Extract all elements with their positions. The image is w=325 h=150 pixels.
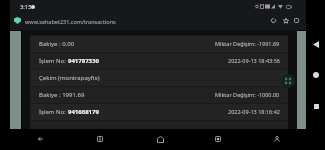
button[interactable]: Back [310, 38, 322, 50]
staticText: 941787330 [68, 57, 99, 65]
button[interactable]: Bookmarks [91, 130, 109, 148]
button[interactable]: Reload [268, 15, 279, 26]
staticText: 2022-09-13 18:43:56 [228, 57, 280, 64]
button[interactable]: Bakiye : 1991.69 [30, 86, 288, 103]
staticText: Bakiye : 1991.69 [39, 91, 85, 99]
button[interactable]: Profile [268, 130, 286, 148]
button[interactable]: Drag handle [281, 74, 295, 88]
staticText: Çekim (montrapayfix) [39, 74, 100, 82]
staticText: 941668179 [68, 108, 99, 116]
button[interactable]: Home [310, 69, 322, 81]
button[interactable]: İşlem No: [30, 103, 288, 120]
staticText: Miktar Değişim: -1991.69 [215, 40, 280, 47]
staticText: 2022-09-13 18:16:42 [228, 108, 280, 115]
staticText: İşlem No: [39, 108, 68, 116]
button[interactable]: Home [151, 130, 169, 148]
button[interactable]: Bookmark [280, 15, 291, 26]
staticText: Bakiye : 0.00 [39, 40, 75, 48]
staticText: Miktar Değişim: -1000.00 [215, 91, 280, 98]
staticText: İşlem No: [39, 57, 68, 65]
button[interactable]: Back [31, 130, 49, 148]
button[interactable]: Tabs [209, 130, 227, 148]
button[interactable]: Bakiye : 0.00 [30, 35, 288, 52]
button[interactable]: Tabs [291, 15, 302, 26]
button[interactable]: Çekim (montrapayfix) [30, 69, 288, 86]
button[interactable]: İşlem No: [30, 52, 288, 69]
staticText: 3:15 [20, 3, 32, 11]
button[interactable]: Recents [310, 100, 322, 112]
staticText: www.sahabet231.com/transactions [25, 18, 116, 25]
